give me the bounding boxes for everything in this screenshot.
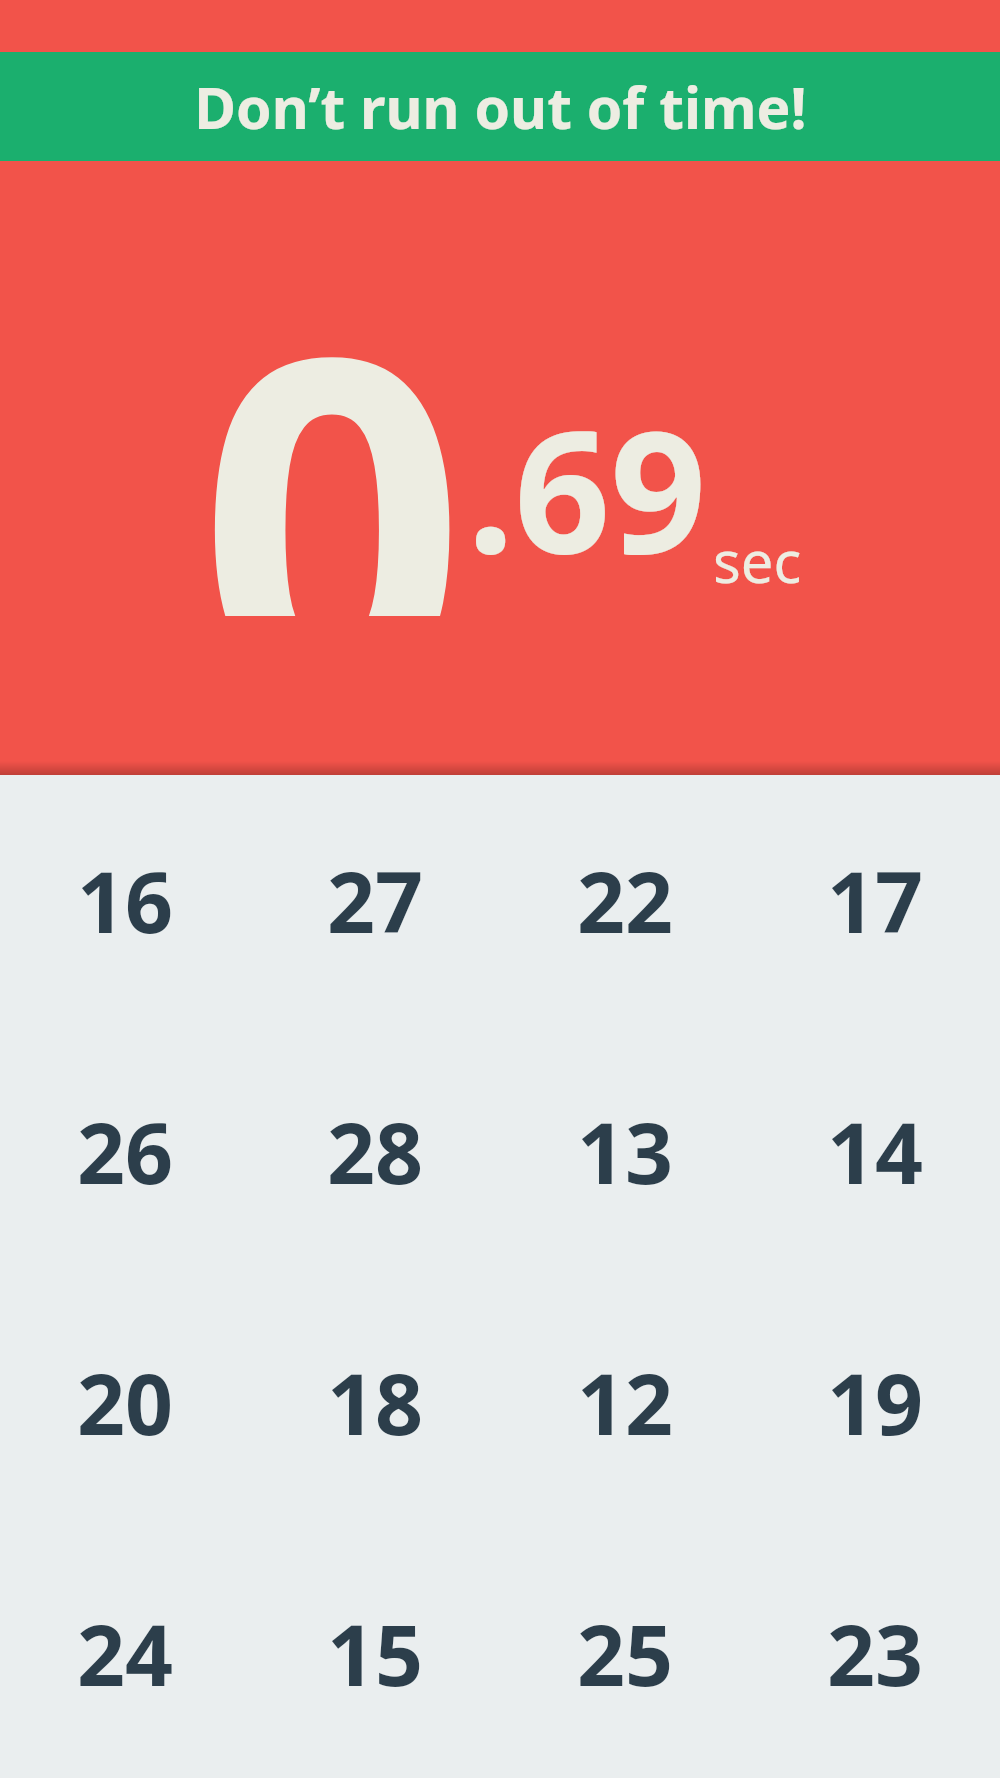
staticText: 16 <box>77 843 174 957</box>
staticText: 20 <box>77 1345 174 1459</box>
staticText: 13 <box>577 1094 674 1208</box>
staticText: 27 <box>327 843 424 957</box>
staticText: 23 <box>827 1596 924 1710</box>
button[interactable]: 27 <box>250 775 500 1025</box>
staticText: 14 <box>827 1094 924 1208</box>
staticText: .69 <box>467 373 707 602</box>
button[interactable]: 23 <box>750 1527 1000 1778</box>
staticText: 22 <box>577 843 674 957</box>
staticText: 26 <box>77 1094 174 1208</box>
staticText: 25 <box>577 1596 674 1710</box>
staticText: 19 <box>827 1345 924 1459</box>
button[interactable]: 17 <box>750 775 1000 1025</box>
button[interactable]: 20 <box>0 1276 250 1527</box>
staticText: 12 <box>577 1345 674 1459</box>
staticText: 15 <box>327 1596 424 1710</box>
button[interactable]: 28 <box>250 1025 500 1276</box>
button[interactable]: 13 <box>500 1025 750 1276</box>
staticText: 24 <box>77 1596 174 1710</box>
staticText: 17 <box>827 843 924 957</box>
staticText: Don’t run out of time! <box>194 68 807 146</box>
staticText: sec <box>713 521 802 600</box>
button[interactable]: Don’t run out of time! <box>0 52 1000 161</box>
button[interactable]: 25 <box>500 1527 750 1778</box>
button[interactable]: 15 <box>250 1527 500 1778</box>
button[interactable]: 26 <box>0 1025 250 1276</box>
button[interactable]: 19 <box>750 1276 1000 1527</box>
staticText: 0 <box>198 196 467 616</box>
button[interactable]: 16 <box>0 775 250 1025</box>
staticText: 18 <box>327 1345 424 1459</box>
button[interactable]: 22 <box>500 775 750 1025</box>
button[interactable]: 24 <box>0 1527 250 1778</box>
staticText: 28 <box>327 1094 424 1208</box>
button[interactable]: 12 <box>500 1276 750 1527</box>
button[interactable]: 14 <box>750 1025 1000 1276</box>
button[interactable]: 18 <box>250 1276 500 1527</box>
